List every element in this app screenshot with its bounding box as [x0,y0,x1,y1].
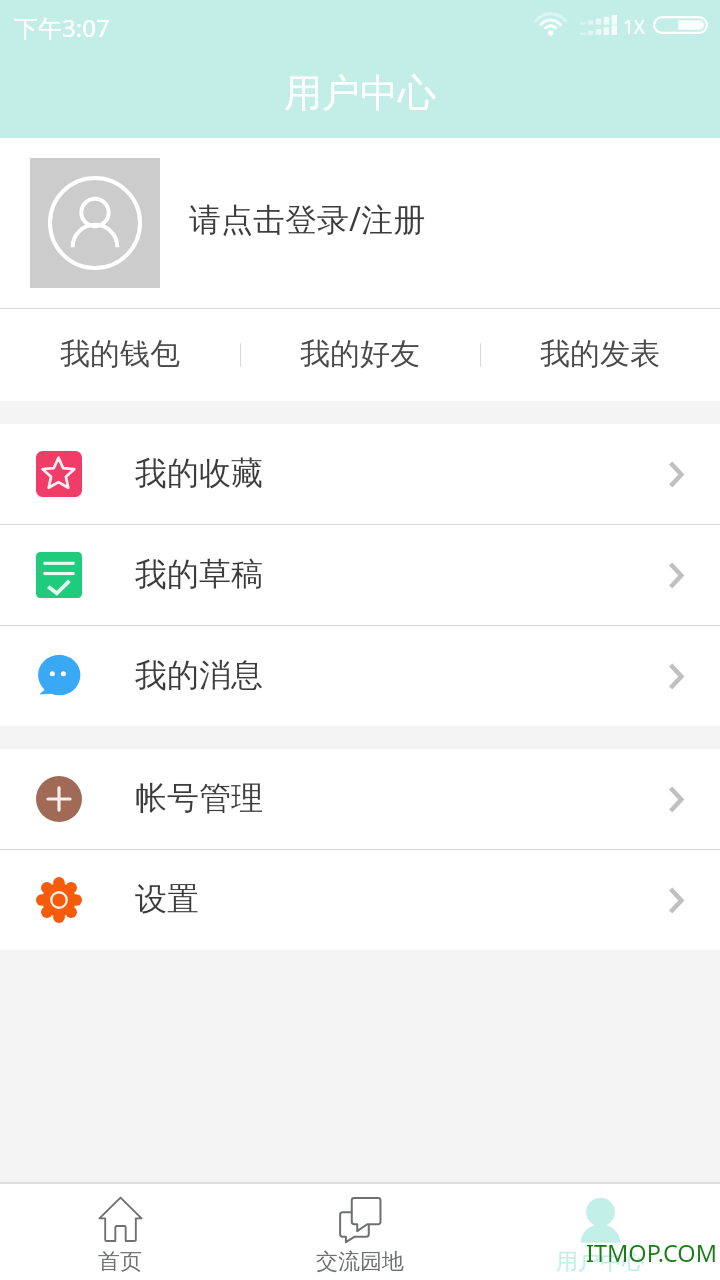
staticText: 1X [623,14,646,40]
button[interactable]: 我的好友 [240,309,480,401]
button[interactable]: 我的收藏 [0,424,720,524]
staticText: 用户中心 [556,1248,644,1276]
staticText: 交流园地 [316,1248,404,1276]
button[interactable]: Avatar [0,138,720,308]
button[interactable]: 我的发表 [480,309,720,401]
staticText: 首页 [98,1248,142,1276]
button[interactable]: Avatar [30,158,160,288]
staticText: 请点击登录/注册 [189,197,425,241]
button[interactable]: 我的草稿 [0,525,720,625]
staticText: 我的好友 [300,335,420,373]
button[interactable]: 帐号管理 [0,749,720,849]
staticText: 我的收藏 [135,453,263,493]
staticText: 设置 [135,879,199,919]
button[interactable]: 我的消息 [0,626,720,726]
button[interactable]: 交流园地 [240,1184,480,1280]
staticText: 我的发表 [540,335,660,373]
button[interactable]: 设置 [0,850,720,950]
staticText: 我的钱包 [60,335,180,373]
button[interactable]: 我的钱包 [0,309,240,401]
staticText: 用户中心 [284,69,436,117]
button[interactable]: 首页 [0,1184,240,1280]
staticText: 帐号管理 [135,778,263,818]
staticText: 我的草稿 [135,554,263,594]
staticText: 下午3:07 [14,11,110,44]
staticText: ITMOP.COM [586,1237,718,1269]
button[interactable]: 用户中心 [480,1184,720,1280]
staticText: 我的消息 [135,655,263,695]
